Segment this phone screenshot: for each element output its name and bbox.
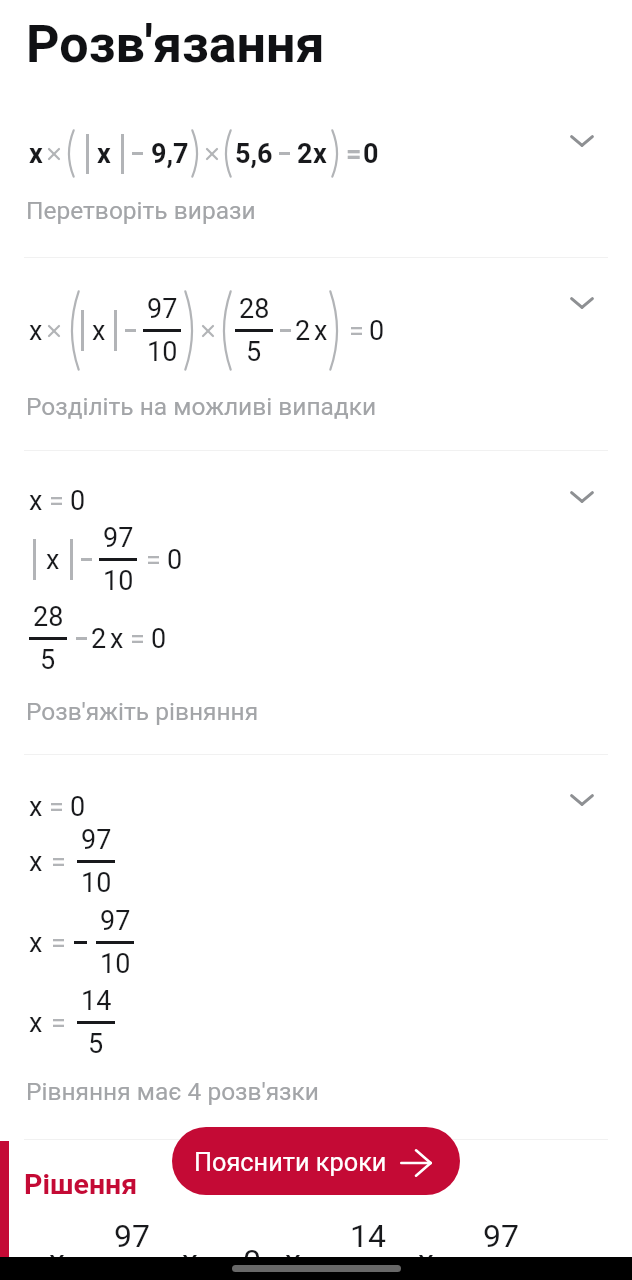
staticText: 0 (363, 138, 379, 170)
staticText: x (29, 927, 43, 959)
staticText: x (46, 544, 60, 576)
staticText: = (51, 1007, 66, 1039)
staticText: x (97, 138, 111, 170)
staticText: 0 (243, 1242, 261, 1280)
staticText: = (346, 138, 362, 170)
staticText: = (51, 927, 66, 959)
staticText: 5 (40, 644, 56, 676)
staticText: = (349, 315, 364, 347)
staticText: 97 (103, 522, 134, 554)
button[interactable]: Expand step (558, 279, 606, 327)
staticText: 97 (147, 293, 178, 325)
staticText: Розв'язання (26, 14, 325, 75)
staticText: 0 (70, 791, 86, 823)
staticText: 97 (100, 905, 131, 937)
staticText: = (84, 1242, 102, 1280)
staticText: = (49, 485, 64, 517)
staticText: x (418, 1242, 434, 1280)
staticText: 2 (297, 138, 313, 170)
staticText: 3 (301, 1259, 312, 1280)
button[interactable]: Пояснити кроки (172, 1127, 460, 1195)
staticText: x (29, 1007, 43, 1039)
staticText: 28 (33, 601, 64, 633)
staticText: x (182, 1242, 198, 1280)
staticText: x (29, 485, 43, 517)
staticText: = (320, 1242, 338, 1280)
staticText: 14 (81, 985, 112, 1017)
staticText: 0 (151, 623, 167, 655)
staticText: 5 (88, 1028, 104, 1060)
staticText: x (285, 1242, 301, 1280)
staticText: = (146, 544, 161, 576)
staticText: 0 (70, 485, 86, 517)
staticText: x (29, 138, 43, 170)
staticText: 28 (239, 293, 270, 325)
staticText: 10 (81, 867, 112, 899)
staticText: 9,7 (151, 138, 189, 170)
staticText: 5 (246, 336, 262, 368)
staticText: 5 (359, 1266, 377, 1280)
button[interactable]: Expand step (558, 473, 606, 521)
staticText: Розділіть на можливі випадки (26, 392, 377, 421)
staticText: 97 (114, 1217, 150, 1255)
staticText: x (314, 315, 328, 347)
staticText: Розв'яжіть рівняння (26, 697, 259, 726)
staticText: = (217, 1242, 235, 1280)
staticText: Перетворіть вирази (26, 196, 256, 225)
staticText: Рівняння має 4 розв'язки (26, 1077, 319, 1106)
staticText: = (51, 846, 66, 878)
staticText: = (49, 791, 64, 823)
staticText: 10 (100, 948, 131, 980)
staticText: 14 (350, 1217, 386, 1255)
staticText: x (29, 315, 43, 347)
staticText: x (110, 623, 124, 655)
staticText: 2 (91, 623, 107, 655)
staticText: 10 (103, 565, 134, 597)
button[interactable]: Expand step (558, 117, 606, 165)
staticText: = (130, 623, 145, 655)
staticText: 97 (81, 824, 112, 856)
staticText: 0 (167, 544, 183, 576)
staticText: 10 (147, 336, 178, 368)
staticText: 2 (295, 315, 311, 347)
staticText: x (313, 138, 327, 170)
staticText: = (453, 1242, 471, 1280)
staticText: 0 (369, 315, 385, 347)
staticText: x (92, 315, 106, 347)
staticText: 5,6 (235, 138, 273, 170)
staticText: x (29, 791, 43, 823)
staticText: 97 (483, 1217, 519, 1255)
staticText: x (49, 1242, 65, 1280)
staticText: x (29, 846, 43, 878)
staticText: Пояснити кроки (194, 1148, 387, 1178)
button[interactable]: Expand step (558, 776, 606, 824)
staticText: Рішення (24, 1168, 138, 1201)
